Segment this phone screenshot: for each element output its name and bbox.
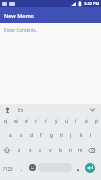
button[interactable]: d (26, 130, 36, 141)
button[interactable]: c (35, 144, 45, 156)
button[interactable]: n (65, 144, 75, 156)
button[interactable]: y (51, 116, 61, 127)
staticText: p (95, 118, 98, 125)
staticText: 0 (97, 116, 99, 119)
button[interactable]: i (71, 116, 81, 127)
staticText: 7 (67, 116, 69, 119)
staticText: f (40, 132, 42, 139)
staticText: m (78, 147, 83, 154)
button[interactable]: z (14, 144, 25, 156)
staticText: t (45, 118, 47, 125)
button[interactable]: x (25, 144, 35, 156)
staticText: 4 (37, 116, 39, 119)
button[interactable]: w (11, 116, 21, 127)
staticText: s (20, 132, 23, 139)
button[interactable]: m (75, 144, 85, 156)
staticText: , (21, 166, 23, 173)
staticText: y (55, 118, 58, 125)
staticText: e (25, 118, 28, 125)
staticText: Enter Contents. (4, 27, 37, 33)
button[interactable]: e (21, 116, 31, 127)
button[interactable]: r (31, 116, 41, 127)
staticText: 9 (87, 116, 89, 119)
button[interactable]: q (0, 116, 11, 127)
button[interactable]: s (16, 130, 26, 141)
staticText: q (4, 118, 7, 125)
button[interactable]: k (76, 130, 86, 141)
button[interactable]: ?123 (0, 158, 16, 180)
staticText: 6 (57, 116, 59, 119)
staticText: 3:32 PM (84, 1, 100, 6)
staticText: i (75, 118, 77, 125)
button[interactable]: a (5, 130, 16, 141)
button[interactable] (73, 158, 82, 180)
button[interactable]: b (55, 144, 65, 156)
button[interactable]: g (46, 130, 56, 141)
button[interactable] (29, 164, 36, 171)
button[interactable]: v (45, 144, 55, 156)
staticText: g (50, 132, 53, 139)
staticText: j (70, 132, 72, 139)
button[interactable] (85, 163, 95, 173)
staticText: k (80, 132, 83, 139)
staticText: 8 (77, 116, 79, 119)
staticText: v (49, 147, 52, 154)
staticText: 5 (47, 116, 49, 119)
button[interactable]: , (17, 158, 27, 180)
button[interactable]: New Memo (0, 7, 101, 23)
button[interactable]: o (81, 116, 91, 127)
button[interactable]: Enter Contents. (0, 23, 101, 104)
button[interactable]: l (86, 130, 96, 141)
button[interactable]: t (41, 116, 51, 127)
staticText: New Memo (4, 12, 34, 19)
staticText: a (9, 132, 12, 139)
staticText: ?123 (3, 166, 13, 172)
button[interactable]: p (91, 116, 101, 127)
staticText: b (59, 147, 62, 154)
staticText: w (14, 118, 18, 125)
staticText: o (85, 118, 88, 125)
staticText: l (90, 132, 92, 139)
staticText: 2 (17, 116, 19, 119)
staticText: 3 (27, 116, 29, 119)
staticText: n (69, 147, 72, 154)
button[interactable]: h (56, 130, 66, 141)
button[interactable]: f (36, 130, 46, 141)
staticText: r (35, 118, 37, 125)
staticText: d (30, 132, 33, 139)
staticText: h (60, 132, 63, 139)
button[interactable] (0, 104, 101, 116)
staticText: u (65, 118, 68, 125)
staticText: c (39, 147, 42, 154)
button[interactable] (85, 144, 98, 156)
staticText: z (18, 147, 21, 154)
button[interactable] (0, 144, 14, 156)
staticText: x (29, 147, 32, 154)
button[interactable]: u (61, 116, 71, 127)
staticText: 1 (7, 116, 9, 119)
staticText: En (18, 107, 24, 113)
button[interactable]: j (66, 130, 76, 141)
